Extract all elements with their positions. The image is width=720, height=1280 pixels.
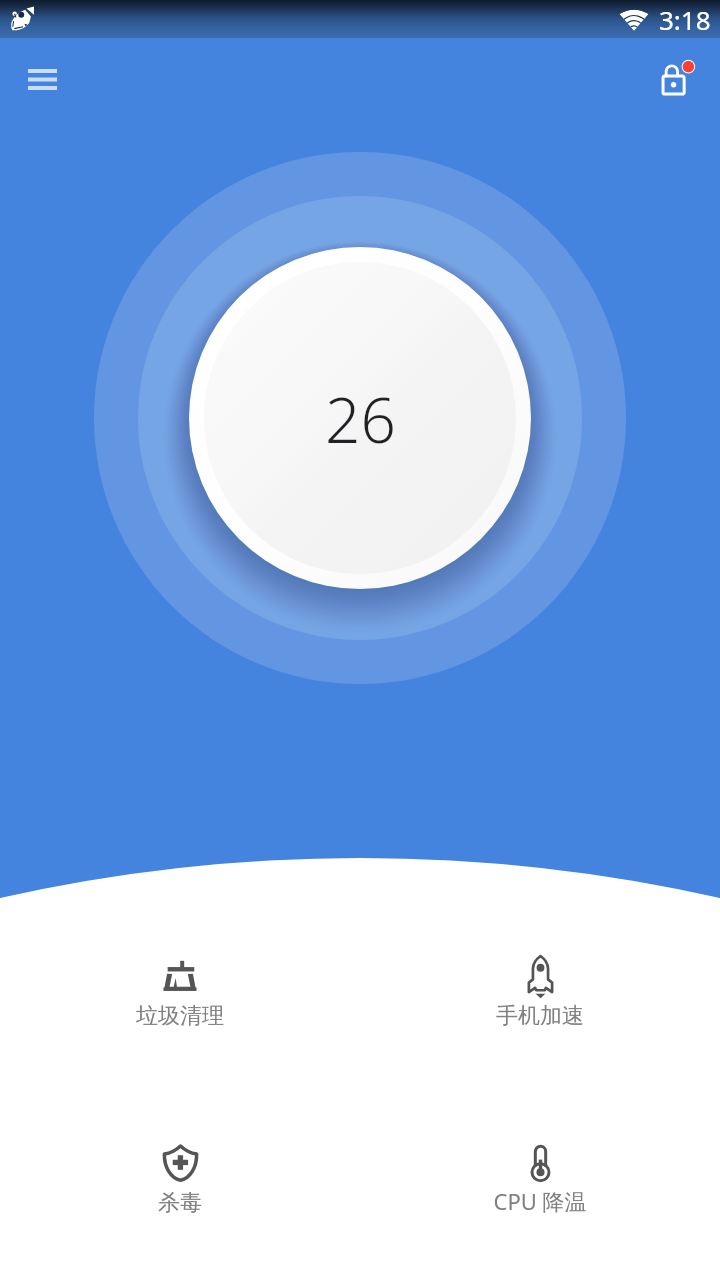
staticText: 3:18 [659,2,711,37]
button[interactable]: Lock [640,42,716,118]
button[interactable]: CPU 降温 [390,1118,690,1222]
staticText: 手机加速 [496,1002,584,1030]
button[interactable]: 垃圾清理 [30,931,330,1038]
button[interactable]: 杀毒 [30,1118,330,1225]
staticText: 垃圾清理 [136,1002,224,1030]
button[interactable]: 26 [189,247,531,589]
staticText: 26 [325,377,396,461]
button[interactable]: Menu [4,41,80,117]
button[interactable]: 手机加速 [390,928,690,1038]
staticText: 杀毒 [158,1189,202,1217]
staticText: CPU 降温 [493,1186,587,1216]
